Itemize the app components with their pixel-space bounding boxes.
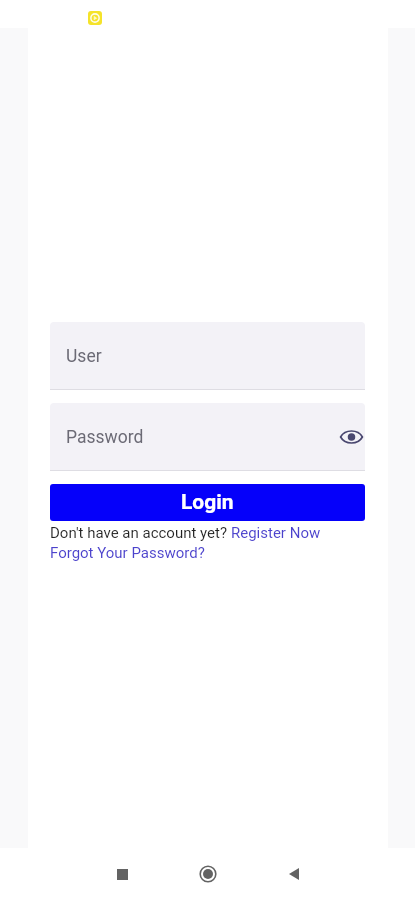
staticText: Password [66, 427, 144, 448]
button[interactable]: Password [50, 403, 365, 471]
staticText: User [66, 346, 102, 367]
button[interactable]: Home [165, 848, 251, 900]
button[interactable]: Recent apps [79, 848, 165, 900]
button[interactable]: Login [50, 484, 365, 521]
button[interactable]: Forgot Your Password? [50, 544, 205, 562]
staticText: Login [181, 490, 234, 515]
button[interactable]: Register Now [231, 524, 321, 542]
button[interactable]: Back [251, 848, 337, 900]
button[interactable]: Show password [337, 417, 365, 457]
staticText: Don't have an account yet? [50, 524, 231, 542]
button[interactable]: App icon [88, 11, 102, 25]
button[interactable]: User [50, 322, 365, 390]
